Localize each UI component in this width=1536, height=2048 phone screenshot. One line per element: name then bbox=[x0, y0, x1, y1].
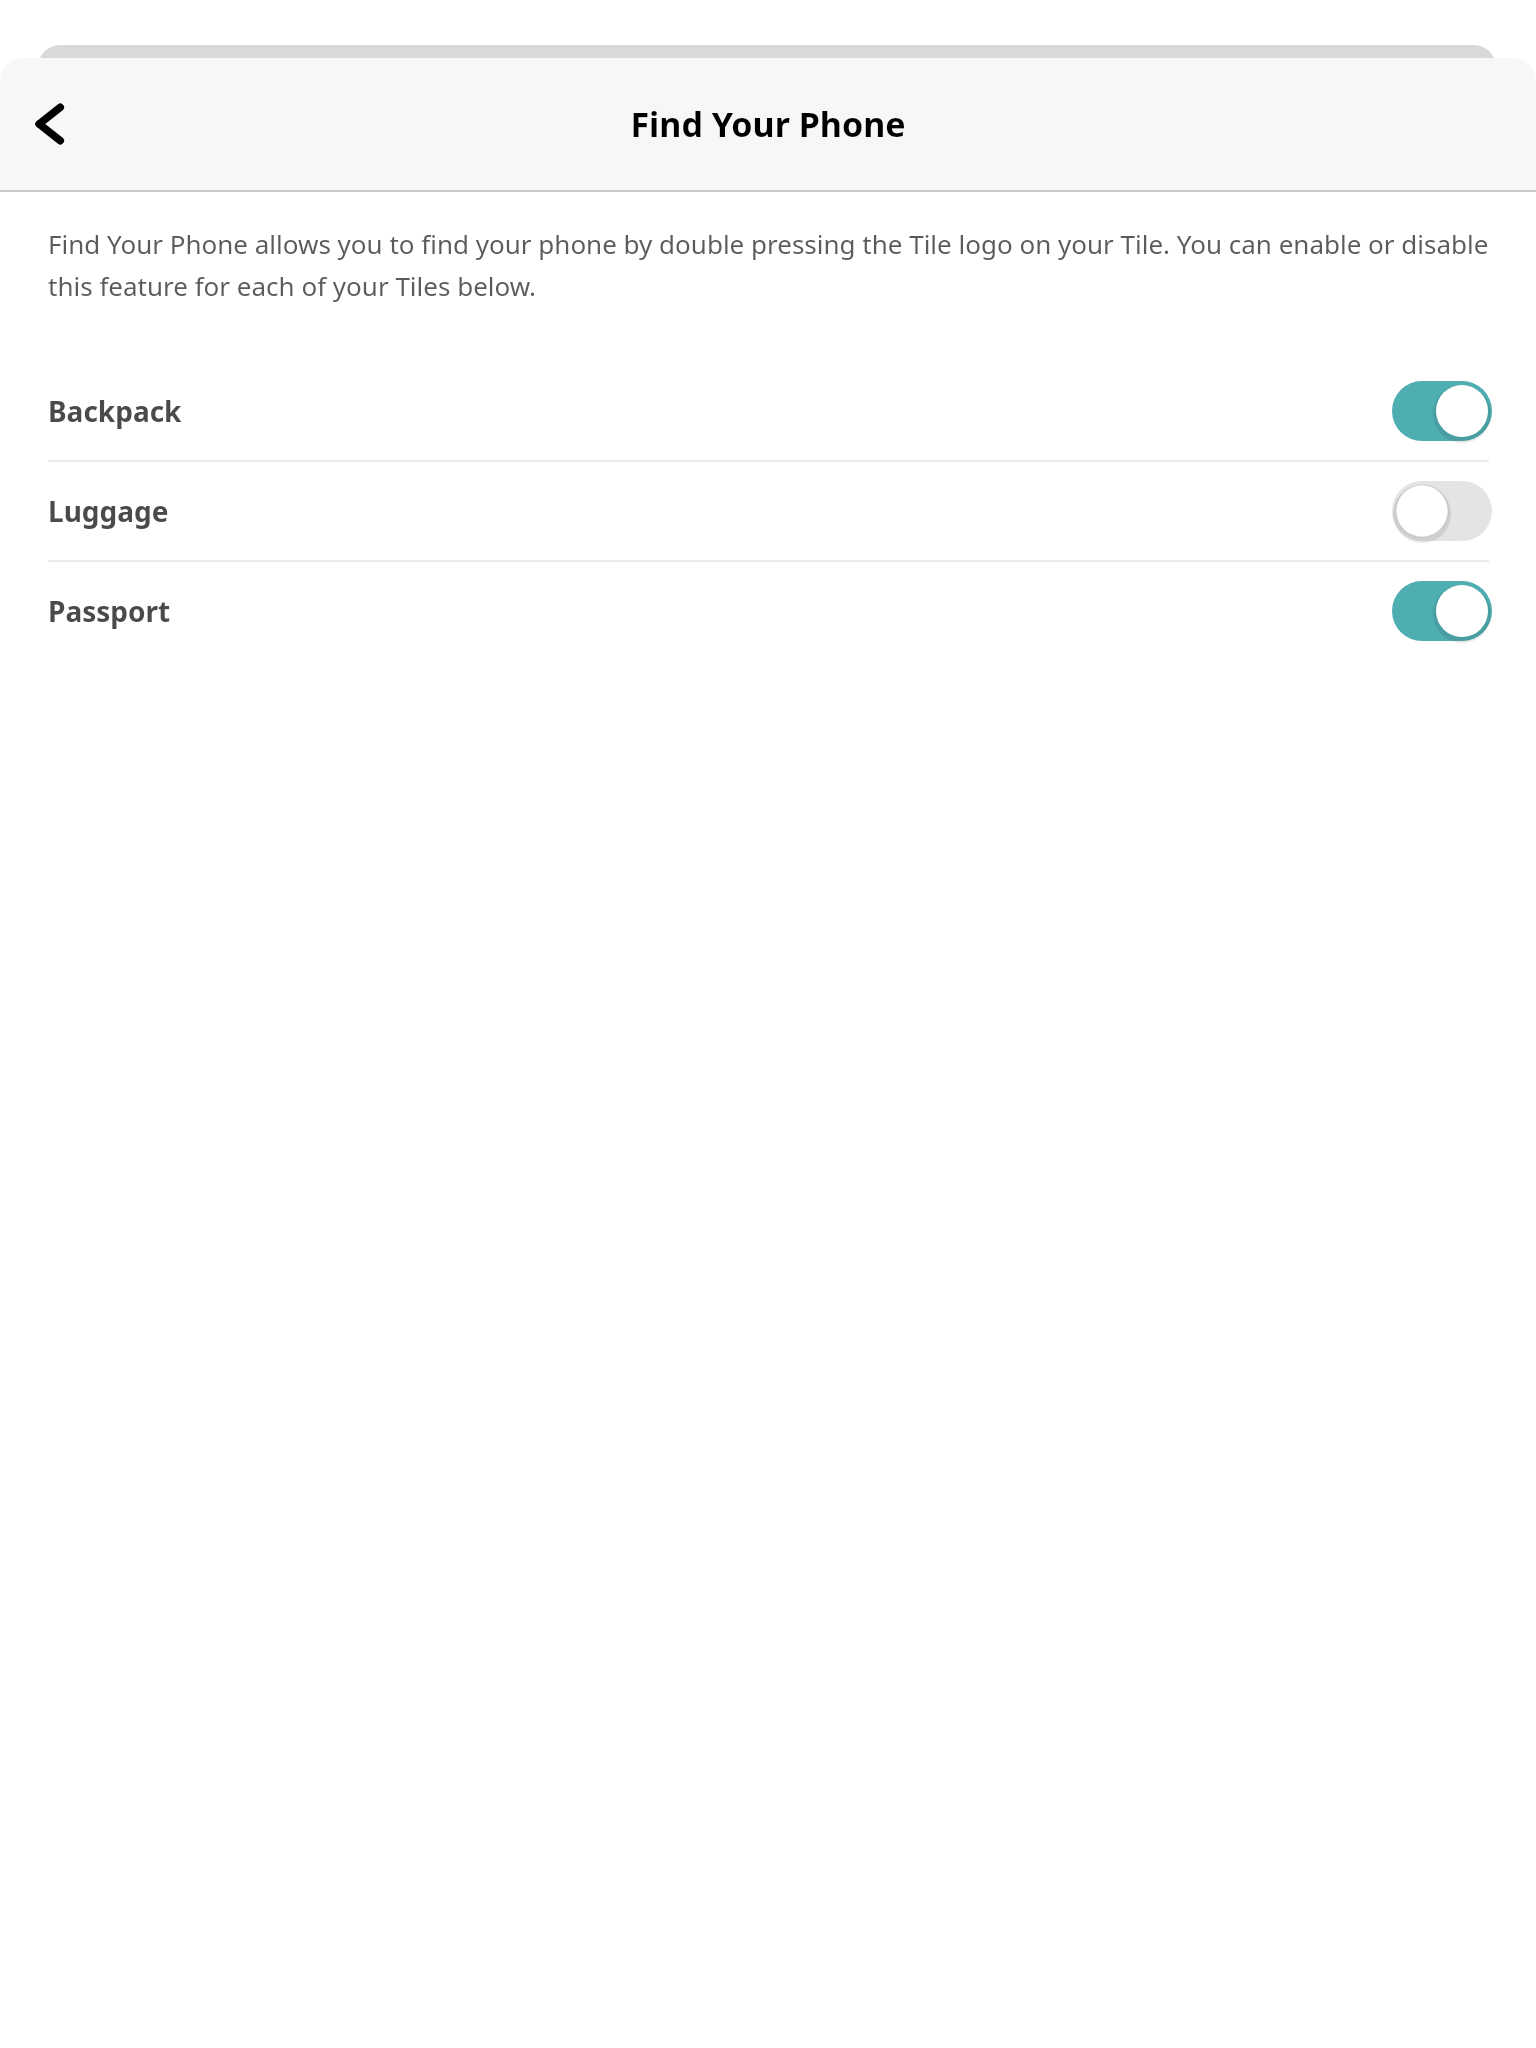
button[interactable]: Back bbox=[0, 76, 96, 172]
button[interactable]: On bbox=[1392, 381, 1492, 441]
staticText: Find Your Phone bbox=[0, 101, 1536, 147]
button[interactable]: On bbox=[1392, 581, 1492, 641]
staticText: Passport bbox=[48, 592, 1392, 630]
button[interactable]: Luggage bbox=[0, 462, 1536, 560]
staticText: Backpack bbox=[48, 392, 1392, 430]
button[interactable]: Passport bbox=[0, 562, 1536, 660]
button[interactable]: Off bbox=[1392, 481, 1492, 541]
staticText: Luggage bbox=[48, 492, 1392, 530]
button[interactable]: Backpack bbox=[0, 362, 1536, 460]
staticText: Find Your Phone allows you to find your … bbox=[48, 226, 1494, 304]
